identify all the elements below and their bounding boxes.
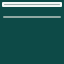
button[interactable] bbox=[2, 2, 62, 7]
button[interactable]: Action bbox=[3, 16, 61, 18]
